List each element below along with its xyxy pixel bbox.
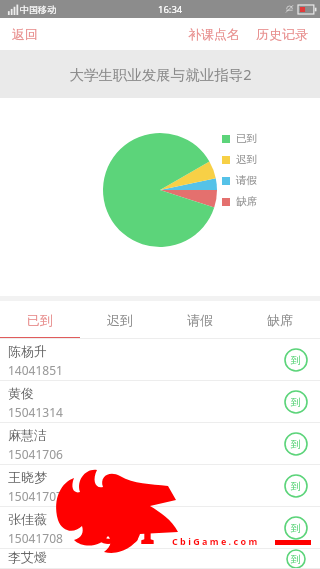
button[interactable]: 请假 [160,301,240,339]
other: 已到 [284,432,308,456]
button[interactable]: 迟到 [80,301,160,339]
staticText: 16:34 [158,3,183,16]
staticText: 请假 [236,174,257,187]
button[interactable]: 已到 [0,301,80,339]
other: 已到 [284,390,308,414]
other: 已到 [284,516,308,540]
button[interactable]: 黄俊 [0,381,320,423]
staticText: 陈杨升 [8,343,47,359]
staticText: 李艾燰 [8,549,47,565]
staticText: 到 [291,438,301,451]
staticText: 缺席 [236,195,257,208]
other: 已到 [284,474,308,498]
staticText: 麻慧洁 [8,427,47,443]
button[interactable]: 张佳薇 [0,507,320,549]
button[interactable]: 王晓梦 [0,465,320,507]
staticText: 请假 [187,312,213,328]
staticText: CBI [95,508,155,554]
staticText: 张佳薇 [8,511,47,527]
button[interactable]: 李艾燰 [0,549,320,569]
staticText: 到 [291,480,301,493]
staticText: 迟到 [236,153,257,166]
staticText: 迟到 [107,312,133,328]
staticText: 缺席 [267,312,293,328]
staticText: 返回 [12,26,38,42]
staticText: 已到 [236,132,257,145]
staticText: 大学生职业发展与就业指导2 [69,64,252,84]
staticText: 王晓梦 [8,469,47,485]
staticText: 到 [291,553,301,566]
staticText: 15041706 [8,446,63,462]
staticText: 到 [291,396,301,409]
staticText: 15041314 [8,404,63,420]
button[interactable]: 麻慧洁 [0,423,320,465]
staticText: 黄俊 [8,385,34,401]
staticText: 15041708 [8,530,63,546]
staticText: C b i G a m e . c o m [172,535,258,547]
staticText: 到 [291,354,301,367]
staticText: 中国移动 [20,4,56,15]
staticText: 历史记录 [256,26,308,42]
other: 已到 [284,549,308,569]
button[interactable]: 返回 [0,18,50,50]
staticText: 到 [291,522,301,535]
other: 已到 [284,348,308,372]
staticText: 15041707 [8,488,63,504]
staticText: 已到 [27,312,53,328]
button[interactable]: 历史记录 [248,18,320,50]
button[interactable]: 陈杨升 [0,339,320,381]
staticText: 补课点名 [188,26,240,42]
button[interactable]: 缺席 [240,301,320,339]
staticText: 14041851 [8,362,63,378]
button[interactable]: 补课点名 [180,18,248,50]
